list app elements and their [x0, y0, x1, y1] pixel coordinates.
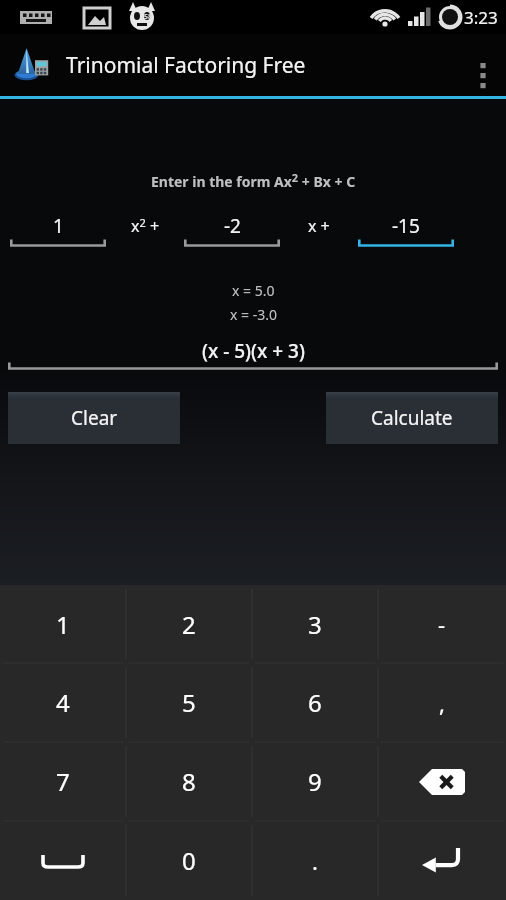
staticText: 8	[182, 765, 196, 798]
button[interactable]: Space	[0, 821, 126, 900]
button[interactable]: 3	[252, 585, 378, 663]
staticText: x +	[308, 215, 330, 237]
staticText: 7	[56, 765, 70, 798]
button[interactable]: 1	[0, 585, 126, 663]
staticText: 1	[56, 608, 70, 641]
button[interactable]: 4	[0, 663, 126, 742]
staticText: 1	[53, 213, 64, 239]
button[interactable]: 9	[252, 742, 378, 821]
staticText: 6	[308, 686, 322, 719]
button[interactable]: 8	[126, 742, 252, 821]
button[interactable]: 6	[252, 663, 378, 742]
staticText: 3	[308, 608, 322, 641]
staticText: 4	[56, 686, 70, 719]
button[interactable]: 2	[126, 585, 252, 663]
button[interactable]: 1	[10, 213, 106, 247]
staticText: ,	[439, 688, 445, 718]
staticText: Trinomial Factoring Free	[66, 51, 306, 80]
staticText: 2	[182, 608, 196, 641]
staticText: x2 +	[131, 215, 160, 237]
button[interactable]: More options	[460, 34, 506, 96]
staticText: -2	[224, 213, 241, 239]
button[interactable]: 0	[126, 821, 252, 900]
staticText: -	[438, 609, 446, 639]
button[interactable]: .	[252, 821, 378, 900]
staticText: Enter in the form Ax2 + Bx + C	[151, 170, 356, 191]
staticText: (x - 5)(x + 3)	[202, 338, 305, 364]
button[interactable]: -	[378, 585, 506, 663]
button[interactable]: -15	[358, 213, 454, 247]
button[interactable]: Calculate	[326, 392, 498, 444]
staticText: 5	[182, 686, 196, 719]
staticText: 58	[144, 12, 153, 22]
button[interactable]: 7	[0, 742, 126, 821]
button[interactable]: ,	[378, 663, 506, 742]
staticText: 3:23	[464, 6, 498, 29]
staticText: .	[312, 846, 318, 876]
staticText: Calculate	[371, 405, 453, 431]
staticText: -15	[392, 213, 420, 239]
staticText: 0	[182, 844, 196, 877]
staticText: 9	[308, 765, 322, 798]
button[interactable]: Backspace	[378, 742, 506, 821]
button[interactable]: -2	[184, 213, 280, 247]
button[interactable]: Enter	[378, 821, 506, 900]
button[interactable]: 5	[126, 663, 252, 742]
staticText: x = -3.0	[230, 305, 277, 324]
staticText: Clear	[71, 405, 118, 431]
staticText: x = 5.0	[232, 281, 275, 300]
button[interactable]: Clear	[8, 392, 180, 444]
